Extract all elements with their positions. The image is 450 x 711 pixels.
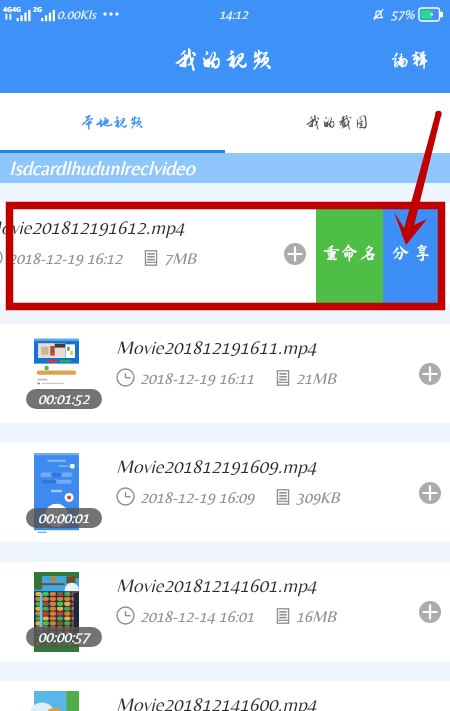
staticText: 14:12 [219, 7, 248, 22]
staticText: Movie201812141601.mp4 [116, 574, 317, 596]
button[interactable]: Add to list [275, 234, 315, 274]
staticText: 7MB [164, 249, 197, 267]
staticText: 00:00:57 [38, 628, 90, 645]
button[interactable]: 00:01:52 [0, 324, 450, 423]
staticText: 57% [391, 7, 415, 22]
staticText: 2018-12-19 16:12 [8, 249, 123, 267]
staticText: 我的视频 [174, 47, 276, 73]
staticText: 21MB [296, 369, 337, 387]
staticText: 4G4G [3, 5, 22, 15]
staticText: Isdcardlhudunlreclvideo [9, 156, 195, 179]
staticText: 2018-12-19 16:09 [140, 488, 255, 506]
button[interactable]: 本地视频 [0, 93, 225, 153]
button[interactable]: Add to list [410, 592, 450, 632]
staticText: 重命名 [323, 244, 377, 261]
staticText: 我的截图 [305, 114, 371, 131]
staticText: 16MB [296, 607, 337, 625]
staticText: 2018-12-14 16:01 [140, 607, 255, 625]
staticText: Movie201812191609.mp4 [116, 455, 317, 477]
button[interactable]: 我的截图 [225, 93, 450, 153]
staticText: 0.00KIs [57, 7, 97, 22]
staticText: Movie201812141600.mp4 [116, 693, 317, 711]
button[interactable]: 00:00:01 [0, 443, 450, 542]
staticText: Movie201812191612.mp4 [0, 216, 185, 238]
button[interactable]: Add to list [410, 354, 450, 394]
staticText: 00:00:01 [38, 509, 90, 526]
staticText: 2018-12-19 16:11 [140, 369, 255, 387]
staticText: 本地视频 [80, 114, 146, 131]
staticText: 2G [33, 5, 43, 15]
staticText: 00:01:52 [38, 390, 90, 407]
button[interactable]: Add to list [410, 473, 450, 513]
staticText: 编辑 [391, 50, 430, 70]
button[interactable]: 分享 [383, 203, 445, 304]
button[interactable]: 00:00:57 [0, 562, 450, 661]
button[interactable]: 编辑 [387, 46, 434, 74]
button[interactable]: 00:00:30 [0, 681, 450, 711]
staticText: 309KB [296, 488, 341, 506]
button[interactable]: 重命名 [316, 203, 383, 304]
staticText: 分享 [392, 244, 436, 261]
staticText: Movie201812191611.mp4 [116, 336, 317, 358]
